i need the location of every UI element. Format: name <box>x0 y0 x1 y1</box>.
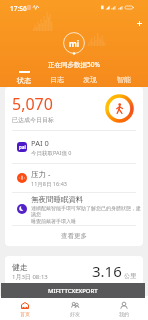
staticText: 首页 <box>20 311 30 317</box>
staticText: 压力 - <box>31 169 51 179</box>
staticText: 連續配戴智能手環可幫助了解您已的身體狀態，建議您 睡覺前戴著手環入睡 <box>31 205 141 224</box>
staticText: 1月3日 08:13 <box>12 273 48 281</box>
staticText: 状态 <box>17 76 31 85</box>
staticText: 我的 <box>119 311 129 317</box>
button[interactable]: 状态 <box>7 68 40 85</box>
staticText: PAI 0 <box>31 138 49 148</box>
button[interactable]: 我的 <box>99 296 148 320</box>
staticText: 日志 <box>50 75 64 84</box>
button[interactable]: 5,070 <box>5 87 143 130</box>
staticText: 查看更多 <box>61 232 87 240</box>
button[interactable]: pai <box>5 131 143 163</box>
staticText: 正在同步数据50% <box>48 60 100 69</box>
staticText: 已达成今日目标 <box>12 116 54 124</box>
button[interactable]: 发现 <box>73 68 107 85</box>
button[interactable]: Add <box>132 16 147 31</box>
staticText: MIFITTCXEXPORT <box>48 287 98 295</box>
staticText: 5,070 <box>12 93 53 115</box>
button[interactable]: 智能 <box>107 68 141 85</box>
staticText: 3.16 <box>92 261 122 281</box>
staticText: 好友 <box>70 311 80 317</box>
staticText: 智能 <box>117 75 131 84</box>
button[interactable]: 首页 <box>0 296 50 320</box>
button[interactable]: 查看更多 <box>5 226 143 246</box>
staticText: 公里 <box>124 272 136 280</box>
staticText: 11月8日 16:43 <box>31 180 67 188</box>
staticText: 发现 <box>83 75 97 84</box>
button[interactable]: 無夜間睡眠資料 <box>5 193 143 225</box>
button[interactable]: 健走 <box>5 256 143 286</box>
staticText: mi <box>69 38 80 49</box>
staticText: 今日获取PAI值 0 <box>31 149 72 157</box>
staticText: 17:56 <box>10 4 27 13</box>
button[interactable]: 压力 - <box>5 164 143 192</box>
staticText: pai <box>19 144 26 150</box>
staticText: 健走 <box>12 262 28 272</box>
button[interactable]: 好友 <box>50 296 99 320</box>
button[interactable]: 日志 <box>40 68 73 85</box>
staticText: 無夜間睡眠資料 <box>31 195 84 204</box>
